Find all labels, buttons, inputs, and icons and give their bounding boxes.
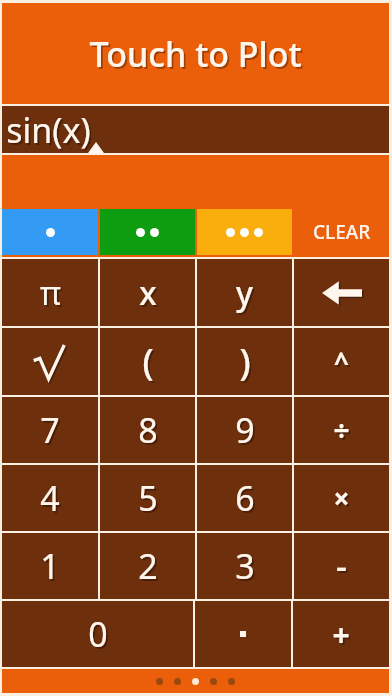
staticText: 3	[235, 543, 255, 589]
staticText: ^	[336, 346, 351, 381]
staticText: -	[336, 543, 347, 589]
button[interactable]: Decimal point	[195, 601, 291, 667]
staticText: 1	[42, 545, 62, 591]
staticText: sin(x)	[8, 109, 93, 155]
staticText: sin(x)	[6, 107, 91, 153]
staticText: 7	[40, 407, 60, 453]
staticText: 6	[235, 475, 255, 521]
staticText: 8	[138, 407, 158, 453]
button[interactable]: Plot style 3	[197, 209, 292, 255]
staticText: 8	[140, 409, 160, 455]
staticText: 0	[90, 613, 110, 659]
button[interactable]: +	[293, 601, 389, 667]
button[interactable]: Plot style 2	[100, 209, 195, 255]
staticText: )	[241, 339, 253, 388]
button[interactable]: Backspace	[294, 259, 389, 326]
button[interactable]: y	[197, 259, 292, 326]
button[interactable]: ×	[294, 465, 389, 531]
staticText: (	[144, 339, 156, 388]
button[interactable]: x	[100, 259, 195, 326]
staticText: CLEAR	[313, 219, 371, 245]
staticText: 4	[42, 477, 62, 523]
button[interactable]: 5	[100, 465, 195, 531]
staticText: π	[42, 273, 63, 317]
button[interactable]: 0	[2, 601, 193, 667]
staticText: ×	[335, 481, 352, 519]
staticText: 6	[237, 477, 257, 523]
button[interactable]: 3	[197, 533, 292, 599]
button[interactable]: ÷	[294, 397, 389, 463]
staticText: +	[334, 616, 352, 657]
staticText: -	[338, 545, 349, 591]
staticText: 5	[138, 475, 158, 521]
button[interactable]: 7	[2, 397, 98, 463]
staticText: 0	[88, 611, 108, 657]
button[interactable]: 8	[100, 397, 195, 463]
staticText: ×	[333, 479, 350, 517]
staticText: ÷	[333, 411, 350, 449]
button[interactable]: Plot style 1	[2, 209, 98, 255]
staticText: ÷	[335, 413, 352, 451]
staticText: x	[141, 273, 159, 317]
staticText: 2	[140, 545, 160, 591]
button[interactable]: (	[100, 328, 195, 395]
button[interactable]: 1	[2, 533, 98, 599]
staticText: π	[40, 271, 61, 315]
staticText: y	[238, 273, 255, 317]
staticText: ^	[334, 344, 349, 379]
button[interactable]: CLEAR	[294, 207, 389, 257]
staticText: 1	[40, 543, 60, 589]
button[interactable]: -	[294, 533, 389, 599]
staticText: 9	[235, 407, 255, 453]
staticText: y	[236, 271, 253, 315]
button[interactable]: 2	[100, 533, 195, 599]
staticText: 5	[140, 477, 160, 523]
staticText: Touch to Plot	[91, 33, 304, 79]
button[interactable]: ^	[294, 328, 389, 395]
staticText: x	[139, 271, 157, 315]
button[interactable]: 9	[197, 397, 292, 463]
button[interactable]: sin(x)	[2, 106, 389, 153]
button[interactable]: )	[197, 328, 292, 395]
staticText: 7	[42, 409, 62, 455]
staticText: 2	[138, 543, 158, 589]
staticText: )	[239, 337, 251, 386]
button[interactable]: Touch to Plot	[2, 3, 389, 104]
staticText: 3	[237, 545, 257, 591]
staticText: 4	[40, 475, 60, 521]
button[interactable]: 6	[197, 465, 292, 531]
staticText: (	[142, 337, 154, 386]
button[interactable]: π	[2, 259, 98, 326]
staticText: 9	[237, 409, 257, 455]
staticText: Touch to Plot	[89, 31, 302, 77]
button[interactable]: 4	[2, 465, 98, 531]
button[interactable]: Square root	[2, 328, 98, 395]
staticText: +	[332, 614, 350, 655]
